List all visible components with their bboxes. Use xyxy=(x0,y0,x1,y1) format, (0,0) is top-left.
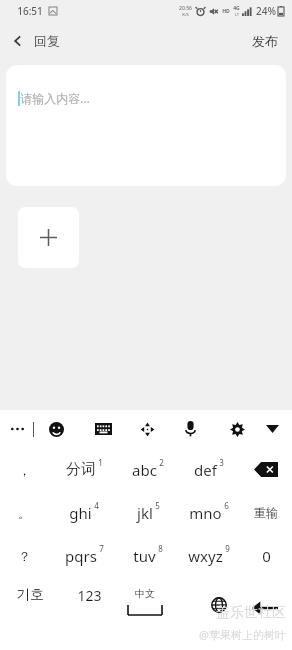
button[interactable]: Back xyxy=(0,27,70,55)
button[interactable]: ghi xyxy=(56,491,112,534)
button[interactable]: 123 xyxy=(61,581,117,625)
button[interactable]: pqrs xyxy=(56,534,112,577)
staticText: 7 xyxy=(99,543,104,554)
staticText: 123 xyxy=(77,586,102,605)
button[interactable]: Keyboard layout xyxy=(89,415,117,443)
button[interactable]: def xyxy=(181,448,237,491)
staticText: ？ xyxy=(18,548,31,564)
staticText: @苹果树上的树叶 xyxy=(199,627,286,642)
button[interactable]: 分词 xyxy=(56,448,112,491)
button[interactable]: Voice input xyxy=(176,415,204,443)
staticText: 16:51 xyxy=(17,4,43,18)
button[interactable]: 发布 xyxy=(238,27,292,55)
staticText: 发布 xyxy=(252,33,278,49)
staticText: tuv xyxy=(133,546,156,566)
button[interactable]: Add image xyxy=(18,207,79,268)
button[interactable]: ？ xyxy=(0,534,52,577)
staticText: 6 xyxy=(224,500,229,511)
staticText: K/S xyxy=(182,12,189,17)
button[interactable]: 请输入内容... xyxy=(6,65,286,186)
staticText: 1 xyxy=(98,457,103,468)
button[interactable]: ， xyxy=(0,448,52,491)
staticText: 。 xyxy=(18,505,31,521)
staticText: 4G xyxy=(233,5,240,12)
button[interactable]: mno xyxy=(181,491,237,534)
staticText: jkl xyxy=(137,503,153,523)
button[interactable]: 0 xyxy=(238,534,292,577)
button[interactable]: abc xyxy=(120,448,176,491)
button[interactable]: Move cursor xyxy=(133,415,161,443)
staticText: 20.56 xyxy=(179,5,192,12)
staticText: 9 xyxy=(225,543,230,554)
button[interactable]: Hide keyboard xyxy=(258,415,286,443)
button[interactable]: Emoji xyxy=(42,415,70,443)
staticText: mno xyxy=(189,503,222,523)
button[interactable]: Settings xyxy=(223,415,251,443)
staticText: ， xyxy=(18,462,31,478)
button[interactable]: jkl xyxy=(120,491,176,534)
button[interactable]: 。 xyxy=(0,491,52,534)
button[interactable]: Change language xyxy=(205,591,233,619)
button[interactable]: 기호 xyxy=(2,581,58,625)
staticText: 中文 xyxy=(135,587,155,600)
staticText: 8 xyxy=(158,543,163,554)
staticText: LT xyxy=(235,12,239,17)
staticText: pqrs xyxy=(65,546,97,566)
staticText: def xyxy=(194,460,217,480)
button[interactable]: tuv xyxy=(120,534,176,577)
button[interactable]: wxyz xyxy=(181,534,237,577)
button[interactable]: Backspace xyxy=(238,448,292,491)
staticText: 回复 xyxy=(34,33,60,49)
staticText: wxyz xyxy=(188,546,223,566)
staticText: 4 xyxy=(94,500,99,511)
button[interactable]: Enter xyxy=(248,591,282,625)
staticText: 请输入内容... xyxy=(20,90,90,106)
staticText: HD xyxy=(222,8,230,15)
staticText: 分词 xyxy=(66,460,96,479)
staticText: 重输 xyxy=(254,505,278,520)
staticText: 3 xyxy=(219,457,224,468)
button[interactable]: Space xyxy=(109,581,181,629)
staticText: 24% xyxy=(256,4,276,18)
staticText: 5 xyxy=(155,500,160,511)
staticText: 盖乐世社区 xyxy=(216,604,286,622)
staticText: 2 xyxy=(159,457,164,468)
staticText: 0 xyxy=(262,546,271,566)
staticText: 기호 xyxy=(16,586,44,604)
button[interactable]: 重输 xyxy=(238,491,292,534)
staticText: abc xyxy=(132,460,157,480)
button[interactable]: More options xyxy=(6,418,28,440)
staticText: ghi xyxy=(69,503,92,523)
